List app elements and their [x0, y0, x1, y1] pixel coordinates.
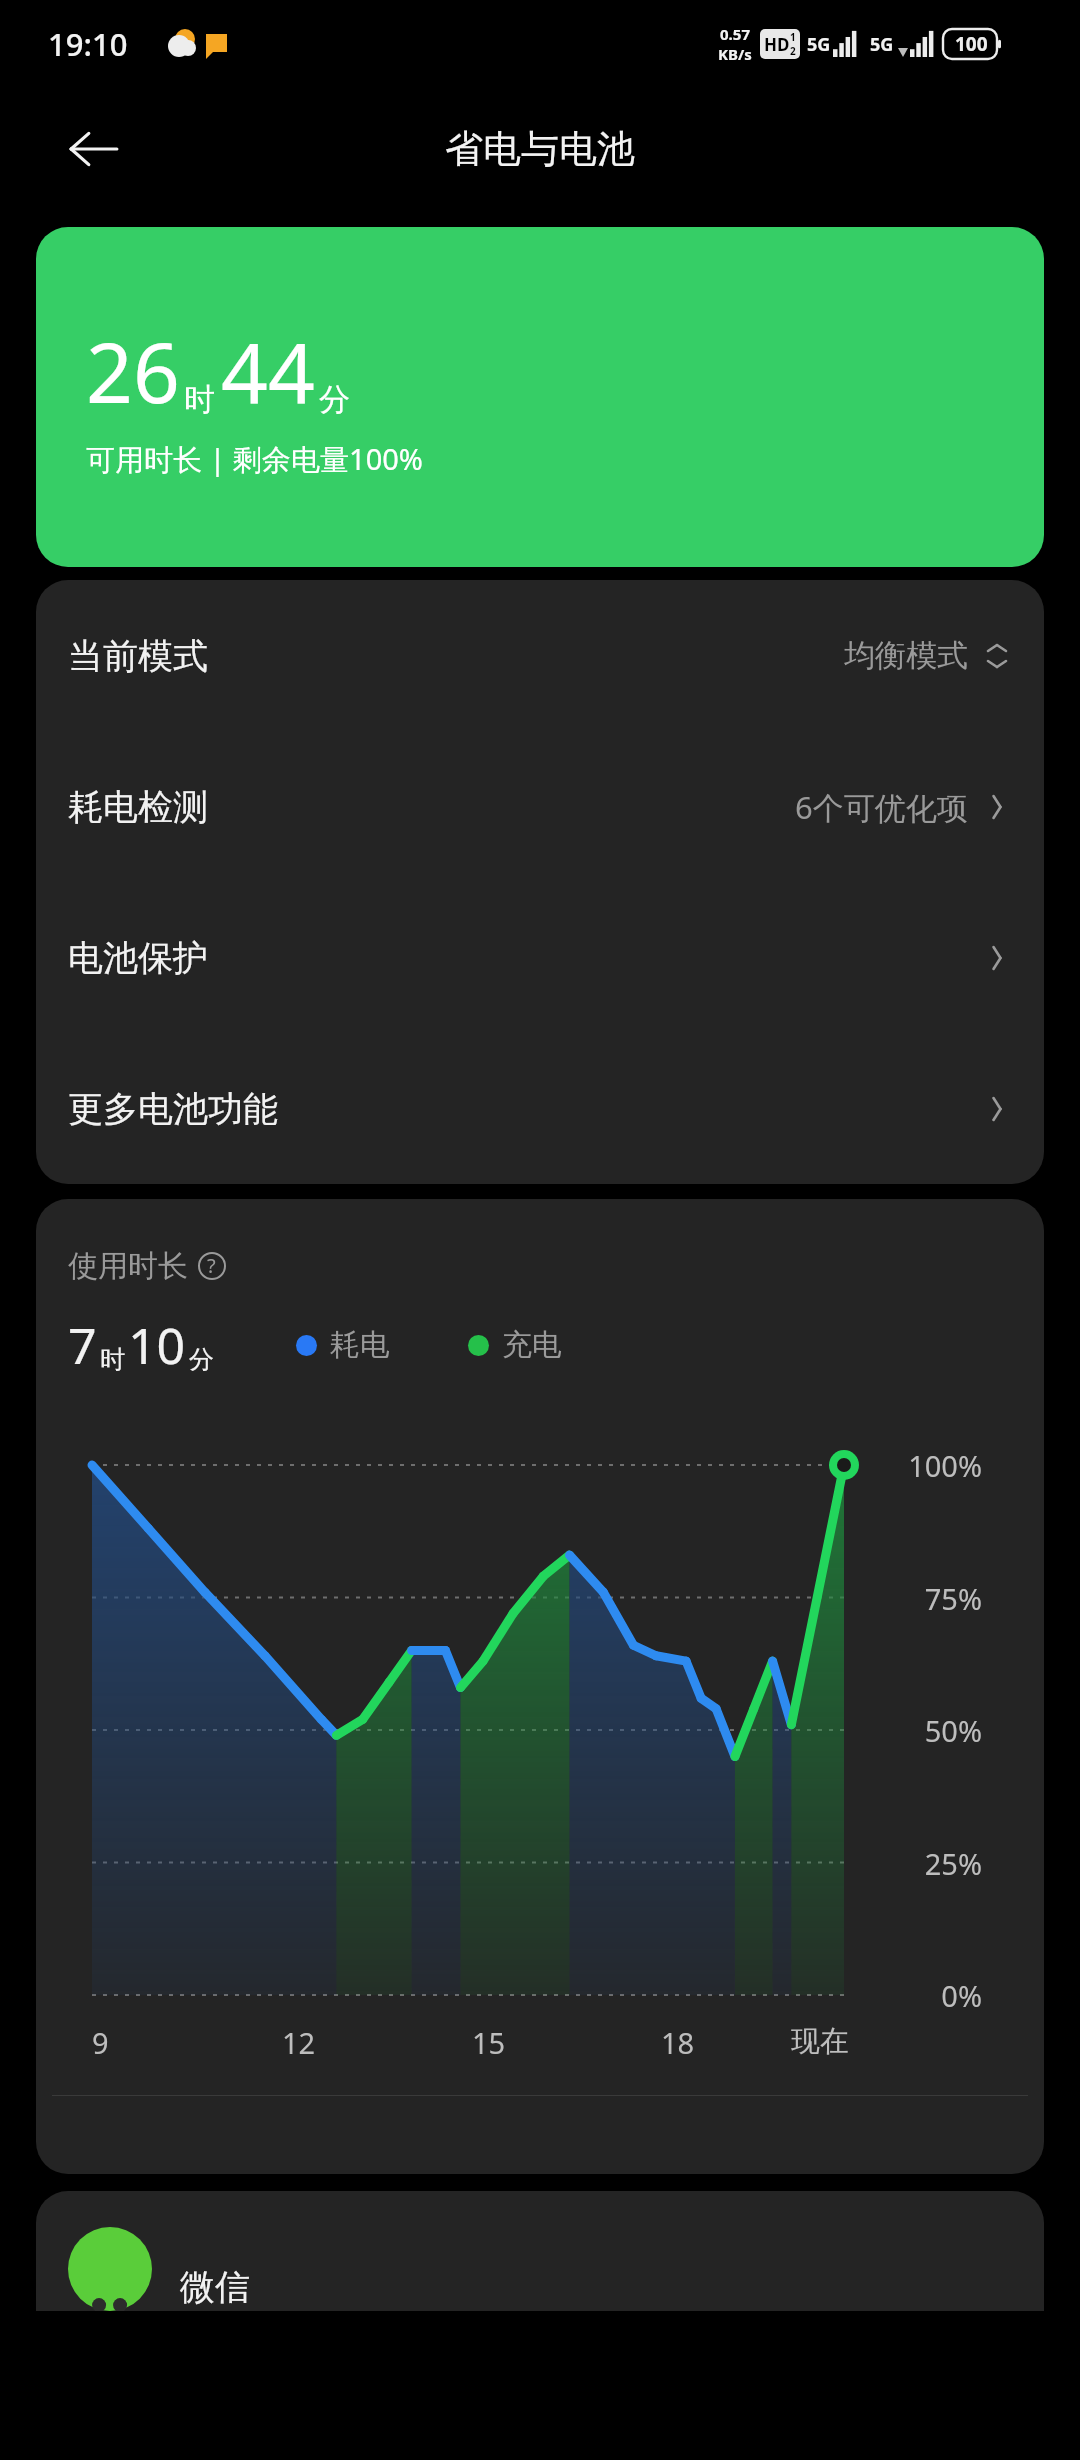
button[interactable]: 耗电检测 [36, 731, 1044, 882]
button[interactable]: 微信 [36, 2191, 1044, 2311]
staticText: 10 [128, 1311, 186, 1379]
staticText: 100 [955, 31, 988, 57]
staticText: 7 [68, 1311, 97, 1379]
staticText: 2 [790, 44, 796, 58]
staticText: 耗电 [330, 1326, 390, 1364]
staticText: 100% [36, 1446, 982, 1485]
staticText: 44 [221, 315, 315, 427]
staticText: 省电与电池 [445, 125, 635, 173]
staticText: 75% [36, 1579, 982, 1618]
button[interactable]: 使用时长 [68, 1247, 235, 1285]
staticText: 25% [36, 1844, 982, 1883]
staticText: 1 [790, 30, 796, 44]
staticText: 12 [282, 2023, 316, 2062]
staticText: 充电 [502, 1326, 562, 1364]
staticText: 当前模式 [68, 634, 208, 678]
staticText: KB/s [718, 44, 752, 64]
button[interactable]: 更多电池功能 [36, 1033, 1044, 1184]
staticText: 时 [184, 380, 215, 419]
staticText: 19:10 [48, 23, 128, 65]
staticText: HD [764, 33, 790, 56]
staticText: 15 [472, 2023, 506, 2062]
staticText: 5G [807, 32, 831, 57]
staticText: ? [207, 1252, 216, 1279]
staticText: 可用时长 | 剩余电量100% [86, 439, 423, 479]
staticText: 电池保护 [68, 936, 208, 980]
button[interactable]: 26 [36, 227, 1044, 567]
staticText: 50% [36, 1711, 982, 1750]
staticText: 18 [661, 2023, 695, 2062]
staticText: 5G [870, 32, 894, 57]
button[interactable]: 返回 [58, 113, 130, 185]
staticText: 微信 [180, 2265, 250, 2309]
staticText: 现在 [791, 2023, 849, 2060]
button[interactable]: 当前模式 [36, 580, 1044, 731]
staticText: 均衡模式 [844, 636, 968, 675]
staticText: 0.57 [720, 24, 750, 44]
staticText: 6个可优化项 [795, 786, 968, 828]
staticText: 更多电池功能 [68, 1087, 278, 1131]
staticText: 9 [92, 2023, 109, 2062]
staticText: 0% [36, 1976, 982, 2015]
staticText: 耗电检测 [68, 785, 208, 829]
staticText: 26 [86, 315, 180, 427]
staticText: 分 [189, 1344, 214, 1375]
staticText: 使用时长 [68, 1247, 188, 1285]
button[interactable]: 电池保护 [36, 882, 1044, 1033]
staticText: 分 [319, 380, 350, 419]
other: 帮助 [198, 1252, 226, 1280]
staticText: 时 [100, 1344, 125, 1375]
